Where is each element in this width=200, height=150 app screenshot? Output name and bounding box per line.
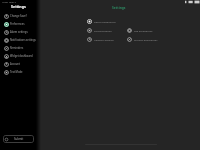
button[interactable]: Widget dashboard — [0, 52, 37, 60]
button[interactable]: Account — [0, 60, 37, 68]
staticText: Settings — [11, 4, 26, 9]
staticText: Change Save? — [10, 14, 27, 18]
staticText: Widget dashboard — [10, 54, 33, 58]
button[interactable]: Security preferences — [127, 35, 167, 44]
button[interactable]: Network settings — [87, 35, 127, 44]
staticText: Test Mode — [10, 70, 23, 74]
staticText: Settings — [112, 5, 126, 9]
staticText: Network settings — [94, 38, 114, 41]
staticText: Site preferences — [134, 29, 153, 32]
button[interactable]: Submit — [3, 135, 34, 143]
staticText: Reminders — [10, 46, 24, 50]
staticText: Security preferences — [134, 38, 158, 41]
staticText: Submit — [14, 137, 24, 141]
button[interactable]: Notifications settings — [0, 36, 37, 44]
staticText: Alarm settings — [10, 30, 28, 34]
button[interactable]: Test Mode — [0, 68, 37, 76]
button[interactable]: Preferences — [0, 20, 37, 28]
staticText: Preferences — [10, 22, 25, 26]
button[interactable]: Alarm settings — [0, 28, 37, 36]
staticText: Device preferences — [94, 20, 116, 23]
staticText: Personalisation — [94, 29, 112, 32]
button[interactable]: Reminders — [0, 44, 37, 52]
staticText: 10:05 Mon 4 — [2, 1, 16, 4]
staticText: Notifications settings — [10, 38, 36, 42]
button[interactable]: Change Save? — [0, 12, 37, 20]
button[interactable]: Device preferences — [87, 17, 127, 26]
staticText: Account — [10, 62, 20, 66]
button[interactable]: Personalisation — [87, 26, 127, 35]
button[interactable]: Site preferences — [127, 26, 167, 35]
